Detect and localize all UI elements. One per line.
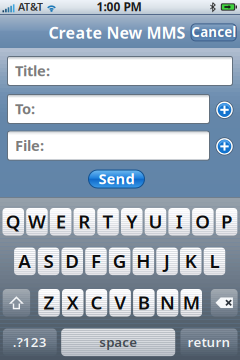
staticText: X bbox=[67, 290, 79, 315]
button[interactable]: P bbox=[216, 208, 237, 235]
staticText: T bbox=[102, 209, 113, 234]
button[interactable]: T bbox=[97, 208, 119, 235]
button[interactable]: S bbox=[38, 248, 59, 275]
button[interactable]: G bbox=[109, 248, 130, 275]
staticText: space bbox=[99, 333, 137, 351]
button[interactable]: A bbox=[14, 248, 36, 275]
staticText: M bbox=[183, 290, 200, 315]
staticText: C bbox=[90, 290, 102, 315]
button[interactable]: C bbox=[86, 289, 107, 316]
button[interactable]: J bbox=[156, 248, 178, 275]
staticText: J bbox=[164, 248, 170, 273]
button[interactable]: Shift bbox=[3, 289, 30, 316]
button[interactable]: R bbox=[74, 208, 95, 235]
button[interactable]: L bbox=[204, 248, 225, 275]
button[interactable]: F bbox=[85, 248, 107, 275]
staticText: R bbox=[78, 209, 90, 234]
staticText: Q bbox=[6, 209, 21, 234]
button[interactable]: E bbox=[50, 208, 71, 235]
staticText: G bbox=[113, 248, 127, 273]
staticText: F bbox=[91, 248, 101, 273]
button[interactable]: H bbox=[133, 248, 154, 275]
button[interactable]: M bbox=[180, 289, 202, 316]
staticText: P bbox=[221, 209, 232, 234]
staticText: N bbox=[160, 290, 175, 315]
staticText: .?123 bbox=[13, 333, 47, 351]
button[interactable]: return bbox=[180, 329, 237, 356]
staticText: To: bbox=[15, 99, 35, 118]
button[interactable]: N bbox=[157, 289, 178, 316]
button[interactable]: I bbox=[168, 208, 190, 235]
staticText: E bbox=[56, 209, 66, 234]
button[interactable]: Y bbox=[121, 208, 142, 235]
staticText: I bbox=[176, 209, 183, 234]
button[interactable]: Send bbox=[88, 170, 144, 188]
staticText: Create New MMS bbox=[48, 22, 185, 43]
staticText: D bbox=[65, 248, 79, 273]
staticText: File: bbox=[15, 135, 44, 155]
staticText: H bbox=[136, 248, 150, 273]
staticText: O bbox=[195, 209, 210, 234]
staticText: W bbox=[28, 209, 46, 234]
staticText: return bbox=[187, 333, 230, 351]
button[interactable]: V bbox=[109, 289, 131, 316]
staticText: S bbox=[43, 248, 53, 273]
staticText: A bbox=[18, 248, 31, 273]
staticText: K bbox=[185, 248, 197, 273]
button[interactable]: W bbox=[26, 208, 48, 235]
button[interactable]: U bbox=[145, 208, 166, 235]
staticText: Y bbox=[126, 209, 137, 234]
staticText: U bbox=[148, 209, 162, 234]
button[interactable]: Cancel bbox=[191, 24, 236, 41]
button[interactable]: O bbox=[192, 208, 214, 235]
staticText: 1:00 PM bbox=[96, 0, 141, 15]
button[interactable]: D bbox=[61, 248, 83, 275]
staticText: AT&T bbox=[18, 0, 43, 14]
button[interactable]: K bbox=[180, 248, 201, 275]
button[interactable]: B bbox=[133, 289, 155, 316]
button[interactable]: .?123 bbox=[3, 329, 57, 356]
staticText: Send bbox=[98, 169, 134, 188]
staticText: Cancel bbox=[191, 23, 236, 41]
button[interactable]: Z bbox=[38, 289, 60, 316]
button[interactable]: Q bbox=[2, 208, 24, 235]
button[interactable]: space bbox=[61, 329, 175, 356]
staticText: Z bbox=[43, 290, 54, 315]
staticText: V bbox=[114, 290, 126, 315]
button[interactable]: Add recipient bbox=[214, 100, 234, 120]
staticText: L bbox=[209, 248, 219, 273]
staticText: Title: bbox=[15, 61, 50, 80]
staticText: B bbox=[138, 290, 150, 315]
button[interactable]: X bbox=[62, 289, 83, 316]
button[interactable]: Add file bbox=[214, 136, 234, 156]
button[interactable]: Delete bbox=[211, 289, 238, 316]
